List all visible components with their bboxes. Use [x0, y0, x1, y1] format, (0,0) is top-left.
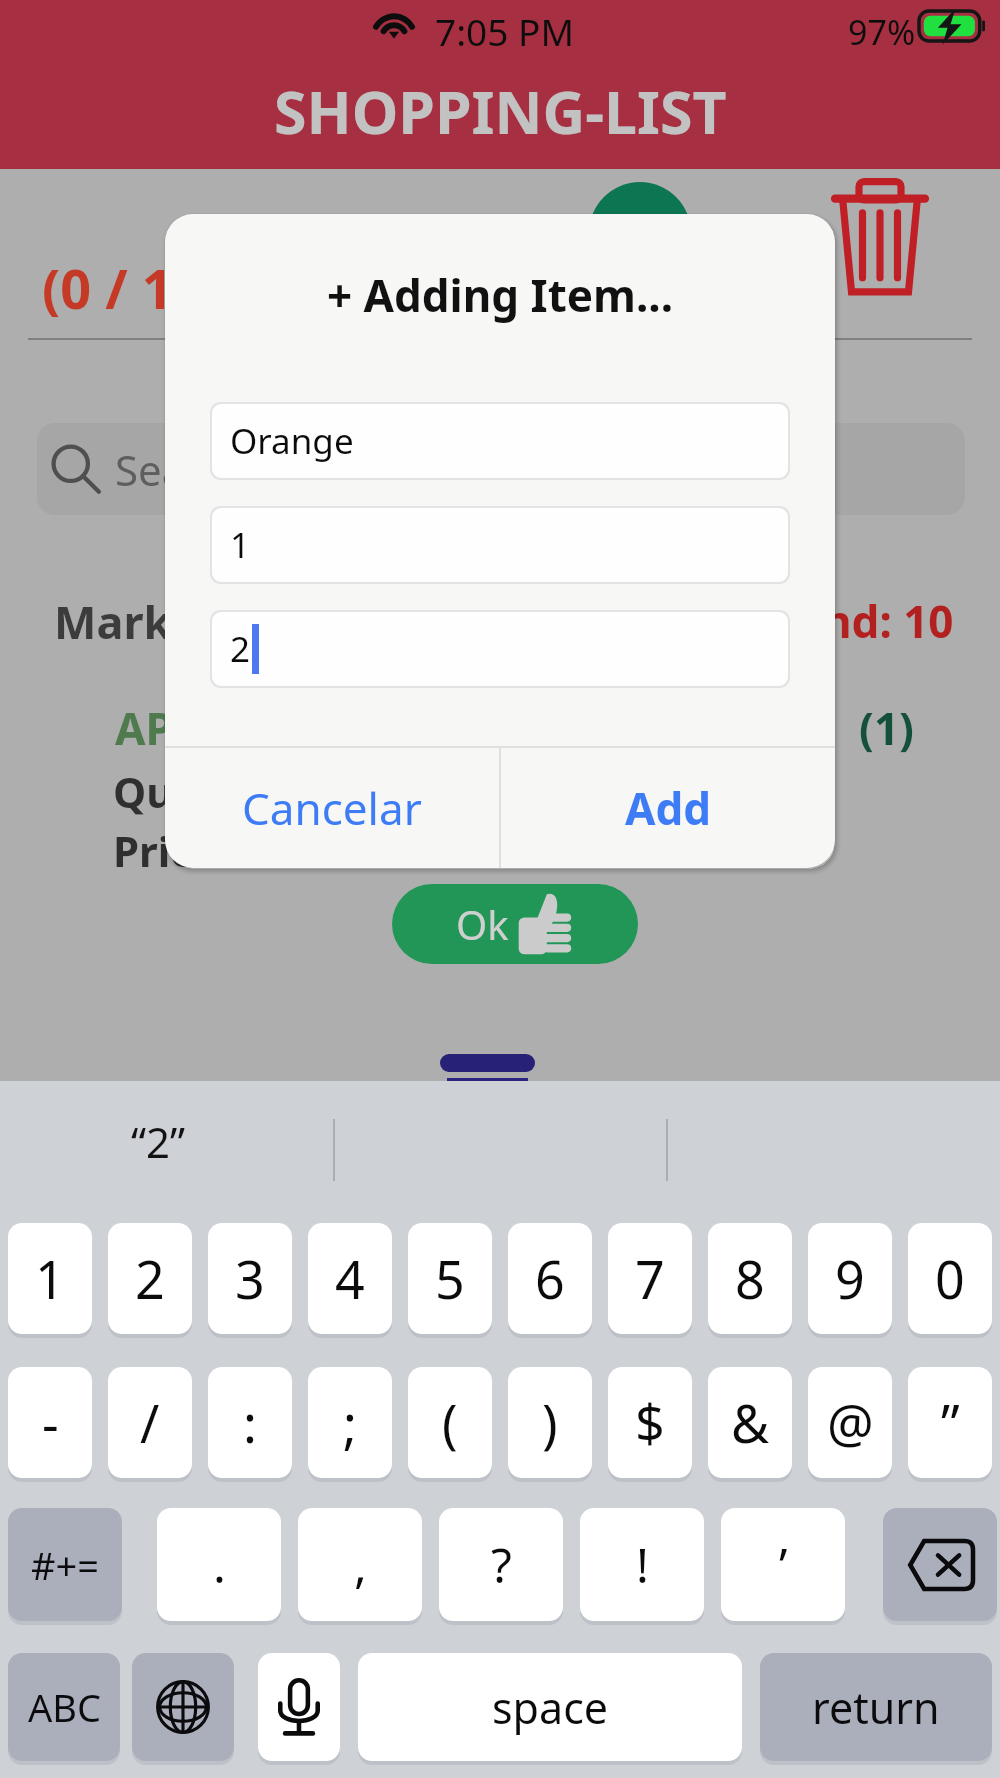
staticText: 2 — [230, 625, 251, 673]
button[interactable]: - — [8, 1367, 92, 1478]
staticText: (0 / 1) — [42, 251, 191, 325]
button[interactable]: 5 — [408, 1223, 492, 1334]
button[interactable]: 4 — [308, 1223, 392, 1334]
staticText: ABC — [28, 1681, 101, 1733]
button[interactable]: Dictation — [258, 1653, 340, 1761]
button[interactable]: return — [760, 1653, 992, 1761]
button[interactable]: Backspace — [883, 1508, 997, 1621]
staticText: ’ — [779, 1532, 788, 1597]
button[interactable]: ( — [408, 1367, 492, 1478]
staticText: @ — [827, 1387, 874, 1458]
staticText: + Adding Item... — [165, 265, 835, 325]
button[interactable]: space — [358, 1653, 742, 1761]
staticText: Quantity: 1 — [113, 763, 346, 820]
button[interactable]: $ — [608, 1367, 692, 1478]
button[interactable]: Search — [37, 423, 965, 515]
button[interactable]: 3 — [208, 1223, 292, 1334]
staticText: - — [42, 1387, 59, 1458]
staticText: 2 — [135, 1243, 165, 1314]
staticText: 7 — [635, 1243, 665, 1314]
button[interactable]: 9 — [808, 1223, 892, 1334]
staticText: 97% — [848, 9, 916, 55]
button[interactable]: ABC — [8, 1653, 120, 1761]
staticText: “2” — [131, 1113, 186, 1170]
staticText: space — [492, 1678, 609, 1737]
staticText: Cancelar — [242, 778, 422, 838]
staticText: 8 — [735, 1243, 765, 1314]
staticText: 9 — [835, 1243, 865, 1314]
staticText: APPLE — [115, 698, 250, 758]
button[interactable]: Orange — [212, 404, 788, 478]
staticText: Total spend: 10 — [627, 591, 954, 651]
button[interactable]: / — [108, 1367, 192, 1478]
staticText: Market — [54, 591, 218, 652]
button[interactable]: Add item — [589, 182, 691, 284]
staticText: 3 — [235, 1243, 265, 1314]
staticText: ) — [542, 1387, 558, 1458]
staticText: ” — [941, 1387, 960, 1458]
staticText: ; — [343, 1387, 357, 1458]
staticText: Ok — [456, 897, 509, 951]
staticText: Orange — [230, 417, 354, 465]
button[interactable]: Cancelar — [165, 748, 499, 868]
staticText: 1 — [230, 521, 251, 569]
button[interactable]: ? — [439, 1508, 563, 1621]
button[interactable]: & — [708, 1367, 792, 1478]
staticText: 1 — [35, 1243, 65, 1314]
staticText: Price: 10 — [113, 822, 288, 879]
staticText: ( — [442, 1387, 458, 1458]
staticText: 7:05 PM — [435, 6, 574, 56]
button[interactable]: 1 — [212, 508, 788, 582]
button[interactable]: : — [208, 1367, 292, 1478]
button[interactable]: 2 — [108, 1223, 192, 1334]
staticText: : — [243, 1387, 257, 1458]
button[interactable]: ” — [908, 1367, 992, 1478]
button[interactable]: @ — [808, 1367, 892, 1478]
button[interactable]: 7 — [608, 1223, 692, 1334]
button[interactable]: . — [157, 1508, 281, 1621]
button[interactable]: , — [298, 1508, 422, 1621]
staticText: ? — [491, 1532, 512, 1597]
staticText: 5 — [435, 1243, 465, 1314]
staticText: 6 — [535, 1243, 565, 1314]
staticText: return — [812, 1678, 940, 1737]
staticText: ! — [636, 1532, 649, 1597]
button[interactable]: ! — [580, 1508, 704, 1621]
staticText: 4 — [335, 1243, 365, 1314]
button[interactable]: #+= — [8, 1508, 122, 1621]
staticText: 0 — [935, 1243, 965, 1314]
button[interactable]: Switch language — [132, 1653, 234, 1761]
button[interactable]: ’ — [721, 1508, 845, 1621]
button[interactable]: ) — [508, 1367, 592, 1478]
staticText: SHOPPING-LIST — [274, 71, 727, 151]
button[interactable]: 8 — [708, 1223, 792, 1334]
staticText: . — [213, 1532, 226, 1597]
staticText: / — [140, 1387, 160, 1458]
button[interactable]: ; — [308, 1367, 392, 1478]
button[interactable]: 6 — [508, 1223, 592, 1334]
button[interactable]: Delete all — [820, 169, 940, 305]
button[interactable]: 0 — [908, 1223, 992, 1334]
staticText: #+= — [31, 1539, 100, 1591]
button[interactable]: 1 — [8, 1223, 92, 1334]
staticText: & — [731, 1387, 770, 1458]
staticText: Search — [115, 441, 248, 498]
staticText: Add — [625, 778, 712, 838]
button[interactable]: 2 — [212, 612, 788, 686]
staticText: (1) — [859, 698, 914, 758]
staticText: $ — [635, 1387, 665, 1458]
staticText: , — [354, 1532, 367, 1597]
button[interactable]: Ok — [392, 884, 638, 964]
button[interactable]: Add — [501, 748, 835, 868]
